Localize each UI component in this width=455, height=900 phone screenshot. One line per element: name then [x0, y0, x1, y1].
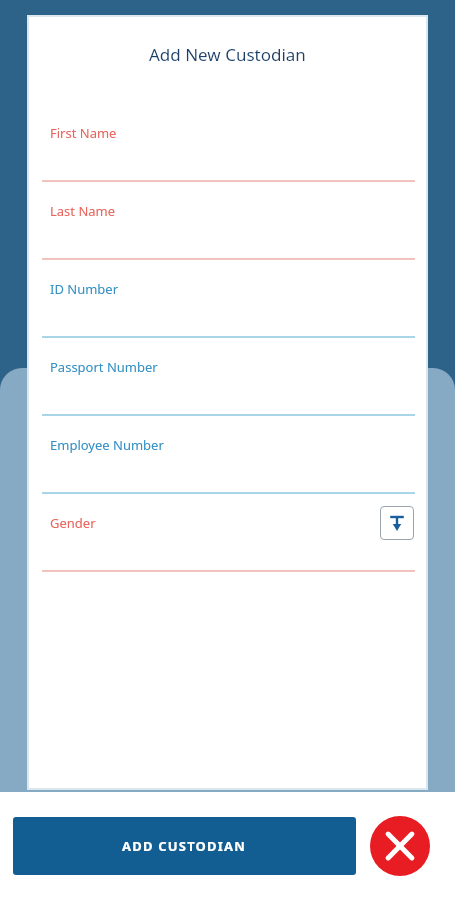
staticText: Passport Number — [50, 358, 158, 376]
staticText: ADD CUSTODIAN — [122, 837, 247, 855]
staticText: ID Number — [50, 280, 119, 298]
button[interactable]: Passport Number — [29, 338, 426, 416]
button[interactable]: Cancel — [370, 816, 430, 876]
button[interactable]: Gender — [29, 494, 426, 572]
button[interactable]: First Name — [29, 104, 426, 182]
staticText: Gender — [50, 514, 96, 532]
button[interactable]: Select gender — [380, 506, 414, 540]
button[interactable]: ID Number — [29, 260, 426, 338]
staticText: Employee Number — [50, 436, 164, 454]
staticText: First Name — [50, 124, 117, 142]
button[interactable]: Last Name — [29, 182, 426, 260]
button[interactable]: ADD CUSTODIAN — [13, 817, 356, 875]
staticText: Last Name — [50, 202, 116, 220]
button[interactable]: Employee Number — [29, 416, 426, 494]
staticText: Add New Custodian — [149, 43, 306, 66]
